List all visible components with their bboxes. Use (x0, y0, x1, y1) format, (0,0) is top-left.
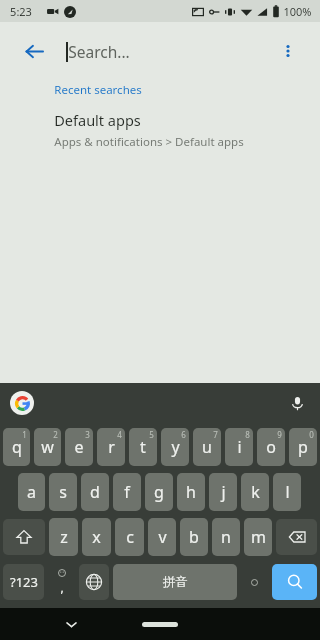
staticText: x (92, 526, 101, 548)
staticText: 拼音 (163, 574, 188, 590)
staticText: g (154, 481, 164, 503)
staticText: Recent searches (54, 82, 142, 98)
button[interactable]: Backspace (276, 519, 317, 555)
button[interactable]: 拼音 (113, 564, 237, 600)
staticText: t (140, 436, 146, 458)
button[interactable]: z (49, 518, 78, 556)
staticText: , (60, 579, 64, 595)
staticText: k (251, 481, 260, 503)
button[interactable]: More options (268, 31, 308, 71)
staticText: s (59, 481, 67, 503)
button[interactable]: x (82, 518, 111, 556)
staticText: 0 (309, 429, 314, 440)
button[interactable]: r (97, 428, 125, 466)
staticText: w (41, 436, 54, 458)
button[interactable]: n (212, 518, 240, 556)
button[interactable]: g (145, 473, 173, 511)
staticText: Default apps (54, 110, 141, 130)
button[interactable]: j (209, 473, 237, 511)
staticText: f (124, 481, 130, 503)
staticText: 7 (213, 429, 218, 440)
button[interactable]: o (257, 428, 285, 466)
button[interactable]: , (46, 561, 77, 603)
button[interactable]: q (3, 428, 30, 466)
staticText: 2 (53, 429, 58, 440)
staticText: n (221, 526, 231, 548)
button[interactable]: y (161, 428, 189, 466)
staticText: u (202, 436, 212, 458)
button[interactable]: Back (12, 29, 56, 73)
staticText: z (60, 526, 68, 548)
staticText: Search... (68, 41, 130, 62)
button[interactable]: l (273, 473, 301, 511)
button[interactable] (239, 561, 270, 603)
button[interactable]: k (241, 473, 269, 511)
staticText: ?123 (10, 573, 38, 591)
button[interactable]: Back (12, 29, 308, 73)
button[interactable]: f (113, 473, 141, 511)
button[interactable]: h (177, 473, 205, 511)
staticText: h (186, 481, 196, 503)
button[interactable]: Home (131, 616, 189, 632)
staticText: e (74, 436, 84, 458)
staticText: b (189, 526, 199, 548)
staticText: i (237, 436, 242, 458)
button[interactable]: w (34, 428, 61, 466)
button[interactable]: m (244, 518, 272, 556)
button[interactable]: e (65, 428, 93, 466)
button[interactable]: v (148, 518, 176, 556)
staticText: 4 (117, 429, 122, 440)
staticText: y (171, 436, 180, 458)
button[interactable]: d (81, 473, 109, 511)
staticText: o (266, 436, 276, 458)
staticText: p (298, 436, 308, 458)
staticText: m (251, 526, 266, 548)
button[interactable]: Change keyboard (79, 564, 109, 600)
button[interactable]: Default apps (0, 104, 320, 160)
staticText: 5 (149, 429, 154, 440)
button[interactable]: p (289, 428, 317, 466)
button[interactable]: s (49, 473, 77, 511)
button[interactable]: i (225, 428, 253, 466)
staticText: 6 (181, 429, 186, 440)
button[interactable]: c (115, 518, 144, 556)
staticText: Apps & notifications > Default apps (54, 134, 244, 150)
button[interactable]: Google (10, 391, 34, 415)
button[interactable]: Search (272, 564, 317, 600)
button[interactable]: b (180, 518, 208, 556)
staticText: c (126, 526, 134, 548)
staticText: j (221, 481, 226, 503)
staticText: 100% (283, 4, 312, 19)
staticText: v (158, 526, 167, 548)
staticText: q (12, 436, 22, 458)
button[interactable]: t (129, 428, 157, 466)
staticText: 9 (277, 429, 282, 440)
staticText: r (108, 436, 115, 458)
staticText: d (90, 481, 100, 503)
staticText: l (285, 481, 290, 503)
button[interactable]: ?123 (3, 564, 44, 600)
staticText: 3 (85, 429, 90, 440)
button[interactable]: Hide keyboard (58, 611, 84, 637)
staticText: 5:23 (10, 4, 32, 19)
button[interactable]: a (18, 473, 45, 511)
button[interactable]: Voice input (284, 390, 310, 416)
staticText: a (27, 481, 36, 503)
button[interactable]: Shift (3, 519, 45, 555)
button[interactable]: u (193, 428, 221, 466)
staticText: 1 (22, 429, 27, 440)
staticText: 8 (245, 429, 250, 440)
